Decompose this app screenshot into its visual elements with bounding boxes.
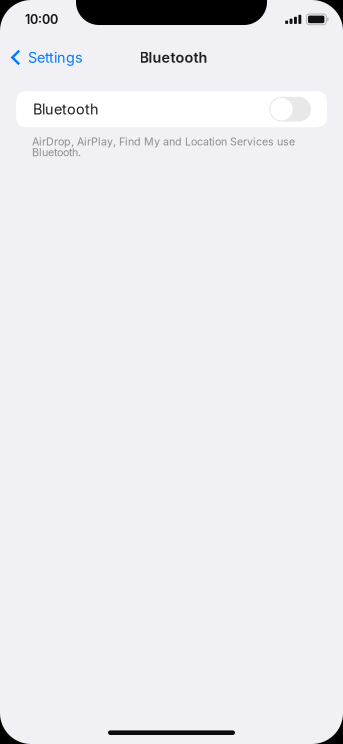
staticText: Bluetooth	[33, 100, 99, 118]
button[interactable]: Settings	[0, 44, 94, 71]
staticText: 10:00	[25, 12, 58, 27]
button[interactable]: Bluetooth	[16, 91, 327, 127]
staticText: Bluetooth	[139, 49, 207, 66]
staticText: AirDrop, AirPlay, Find My and Location S…	[32, 135, 295, 159]
staticText: Settings	[28, 49, 83, 66]
